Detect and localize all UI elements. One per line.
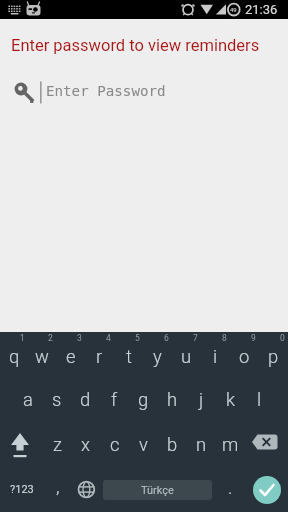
staticText: k	[226, 389, 236, 411]
staticText: u	[181, 346, 192, 368]
button[interactable]: v	[129, 422, 158, 467]
button[interactable]	[0, 422, 43, 467]
staticText: .	[228, 477, 233, 499]
staticText: r	[96, 346, 103, 368]
staticText: m	[222, 434, 239, 456]
staticText: n	[196, 434, 207, 456]
button[interactable]: o	[230, 332, 259, 377]
staticText: 7	[193, 333, 198, 343]
staticText: Enter password to view reminders	[11, 36, 260, 55]
staticText: 0	[280, 333, 285, 343]
button[interactable]: a	[14, 377, 42, 422]
button[interactable]: s	[42, 377, 71, 422]
staticText: x	[81, 434, 90, 456]
staticText: y	[153, 346, 162, 368]
staticText: 3	[77, 333, 82, 343]
staticText: z	[53, 434, 62, 456]
staticText: 1	[20, 333, 25, 343]
button[interactable]: n	[187, 422, 216, 467]
staticText: Enter Password	[46, 83, 166, 100]
staticText: b	[167, 434, 178, 456]
staticText: f	[111, 389, 118, 411]
staticText: ,	[56, 476, 60, 498]
button[interactable]: w	[28, 332, 56, 377]
staticText: v	[139, 434, 148, 456]
staticText: 49	[230, 6, 237, 13]
button[interactable]: x	[71, 422, 100, 467]
button[interactable]: j	[187, 377, 216, 422]
button[interactable]: g	[129, 377, 158, 422]
button[interactable]: q	[0, 332, 28, 377]
button[interactable]: h	[158, 377, 187, 422]
staticText: i	[213, 346, 218, 368]
staticText: o	[239, 346, 250, 368]
button[interactable]: ?123	[0, 467, 43, 512]
staticText: a	[23, 389, 33, 411]
staticText: 6	[164, 333, 169, 343]
button[interactable]: c	[100, 422, 129, 467]
staticText: q	[9, 346, 20, 368]
staticText: 21:36	[245, 2, 278, 17]
button[interactable]	[245, 422, 288, 467]
staticText: w	[35, 346, 49, 368]
staticText: l	[257, 389, 262, 411]
button[interactable]: m	[216, 422, 245, 467]
button[interactable]: p	[259, 332, 288, 377]
button[interactable]: d	[71, 377, 100, 422]
staticText: 4	[106, 333, 111, 343]
staticText: h	[167, 389, 178, 411]
staticText: d	[80, 389, 91, 411]
button[interactable]: r	[85, 332, 114, 377]
button[interactable]: .	[216, 467, 245, 512]
button[interactable]: Enter Password	[0, 72, 288, 112]
staticText: j	[199, 389, 204, 411]
button[interactable]: z	[43, 422, 71, 467]
staticText: 8	[222, 333, 227, 343]
staticText: Türkçe	[141, 484, 174, 497]
staticText: 2	[48, 333, 53, 343]
button[interactable]: y	[143, 332, 172, 377]
staticText: p	[268, 346, 279, 368]
button[interactable]: l	[245, 377, 274, 422]
staticText: 5	[135, 333, 140, 343]
staticText: 9	[251, 333, 256, 343]
button[interactable]: i	[201, 332, 230, 377]
staticText: c	[110, 434, 120, 456]
button[interactable]: f	[100, 377, 129, 422]
button[interactable]: u	[172, 332, 201, 377]
button[interactable]: b	[158, 422, 187, 467]
button[interactable]: k	[216, 377, 245, 422]
staticText: ?123	[10, 483, 34, 496]
button[interactable]: t	[114, 332, 143, 377]
button[interactable]	[72, 467, 101, 512]
staticText: s	[52, 389, 62, 411]
button[interactable]: e	[56, 332, 85, 377]
staticText: e	[66, 346, 76, 368]
button[interactable]: ,	[43, 467, 72, 512]
staticText: t	[126, 346, 132, 368]
button[interactable]: Türkçe	[101, 467, 216, 512]
staticText: g	[138, 389, 149, 411]
button[interactable]	[245, 467, 288, 512]
